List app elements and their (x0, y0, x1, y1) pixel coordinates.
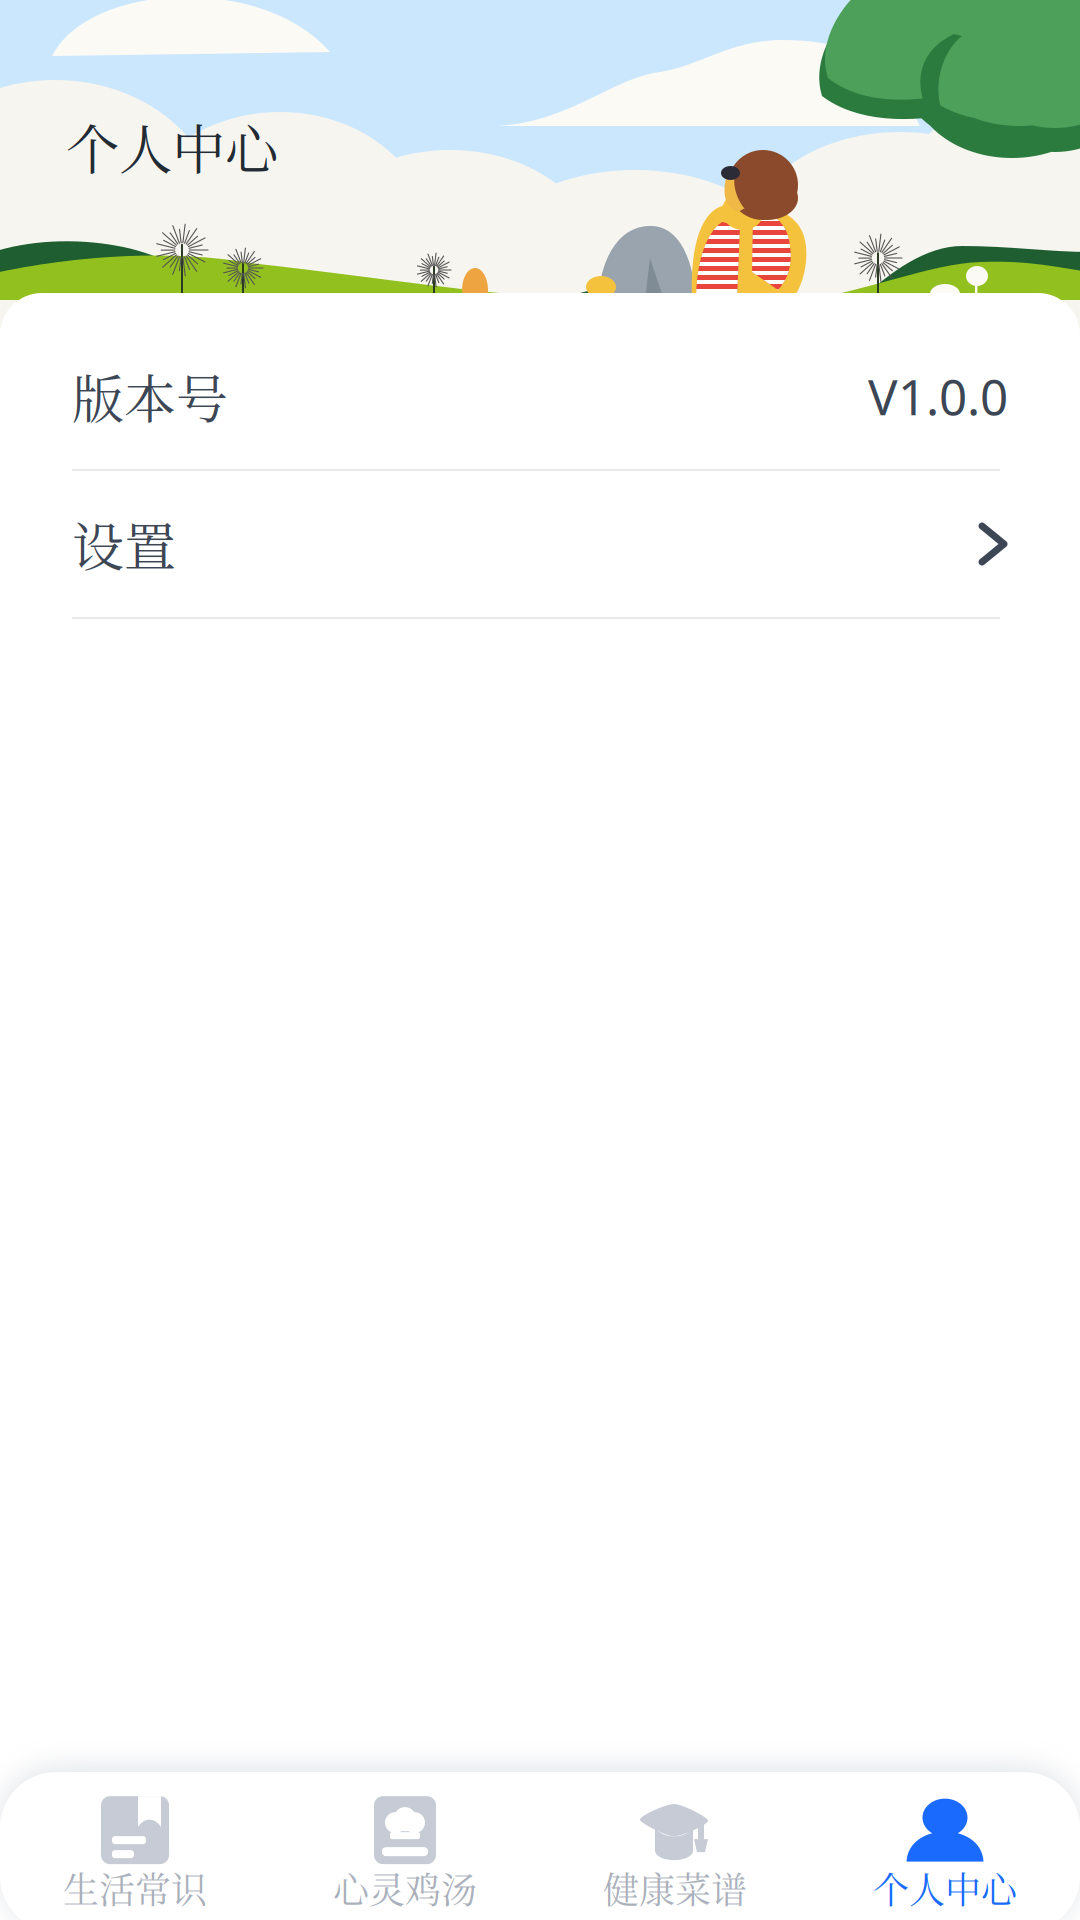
staticText: 个人中心 (66, 108, 278, 185)
staticText: 个人中心 (873, 1862, 1017, 1914)
staticText: 健康菜谱 (603, 1862, 747, 1914)
button[interactable]: 生活常识 (0, 1772, 270, 1920)
button[interactable]: 版本号 (0, 293, 1080, 469)
staticText: V1.0.0 (868, 362, 1008, 430)
button[interactable]: 健康菜谱 (540, 1772, 810, 1920)
button[interactable]: 设置 (0, 471, 1080, 617)
staticText: 版本号 (72, 359, 228, 433)
button[interactable]: 个人中心 (810, 1772, 1080, 1920)
staticText: 设置 (72, 507, 176, 581)
staticText: 心灵鸡汤 (333, 1862, 477, 1914)
staticText: 生活常识 (63, 1862, 207, 1914)
button[interactable]: 心灵鸡汤 (270, 1772, 540, 1920)
